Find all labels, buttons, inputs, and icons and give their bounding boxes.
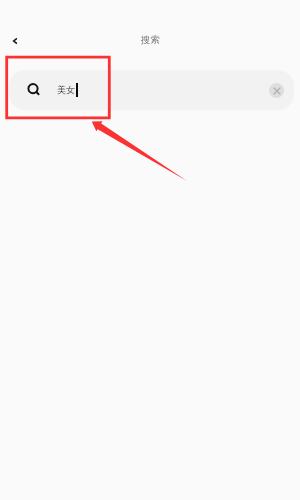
staticText: 美女 — [57, 84, 75, 95]
button[interactable]: Back — [3, 29, 27, 53]
staticText: 搜索 — [141, 34, 160, 46]
button[interactable]: 美女 — [9, 70, 294, 110]
button[interactable]: Clear search — [269, 83, 284, 98]
